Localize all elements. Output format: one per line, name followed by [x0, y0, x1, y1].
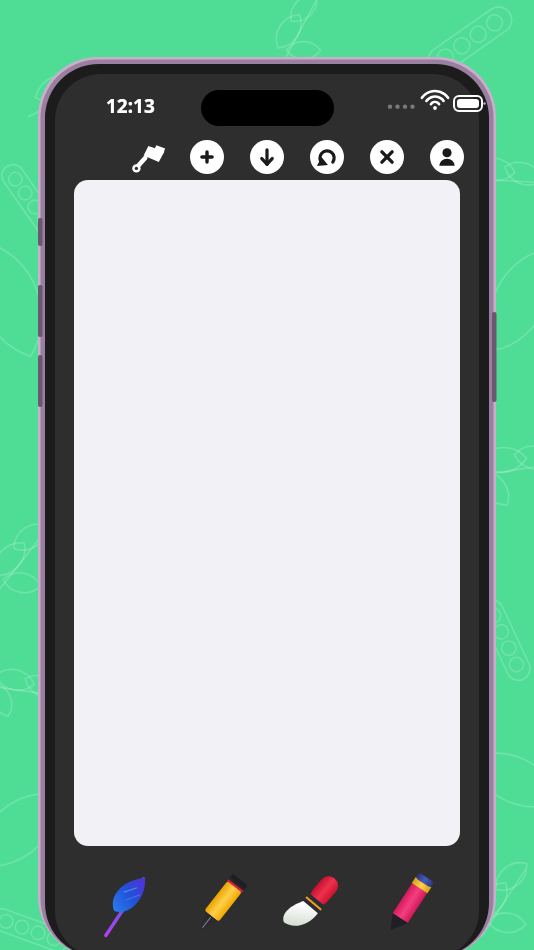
- button[interactable]: Add: [190, 140, 224, 174]
- button[interactable]: Brush: [130, 138, 170, 178]
- button[interactable]: Drawing canvas: [74, 180, 460, 846]
- button[interactable]: Pen tool: [186, 869, 256, 939]
- button[interactable]: Pencil tool: [374, 867, 446, 939]
- button[interactable]: Account: [430, 140, 464, 174]
- staticText: 12:13: [106, 93, 155, 119]
- button[interactable]: Feather tool: [96, 869, 166, 939]
- button[interactable]: Close: [370, 140, 404, 174]
- button[interactable]: Paintbrush tool: [276, 865, 352, 941]
- button[interactable]: Download: [250, 140, 284, 174]
- button[interactable]: Undo: [310, 140, 344, 174]
